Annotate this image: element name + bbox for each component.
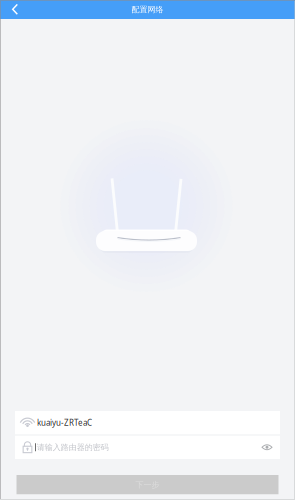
button[interactable]: Show password [254,437,280,457]
staticText: 配置网络 [131,5,163,14]
button[interactable]: Back [0,0,28,19]
staticText: kuaiyu-ZRTeaC [37,417,92,428]
staticText: 请输入路由器的密码 [37,442,109,452]
staticText: 下一步 [135,480,159,490]
